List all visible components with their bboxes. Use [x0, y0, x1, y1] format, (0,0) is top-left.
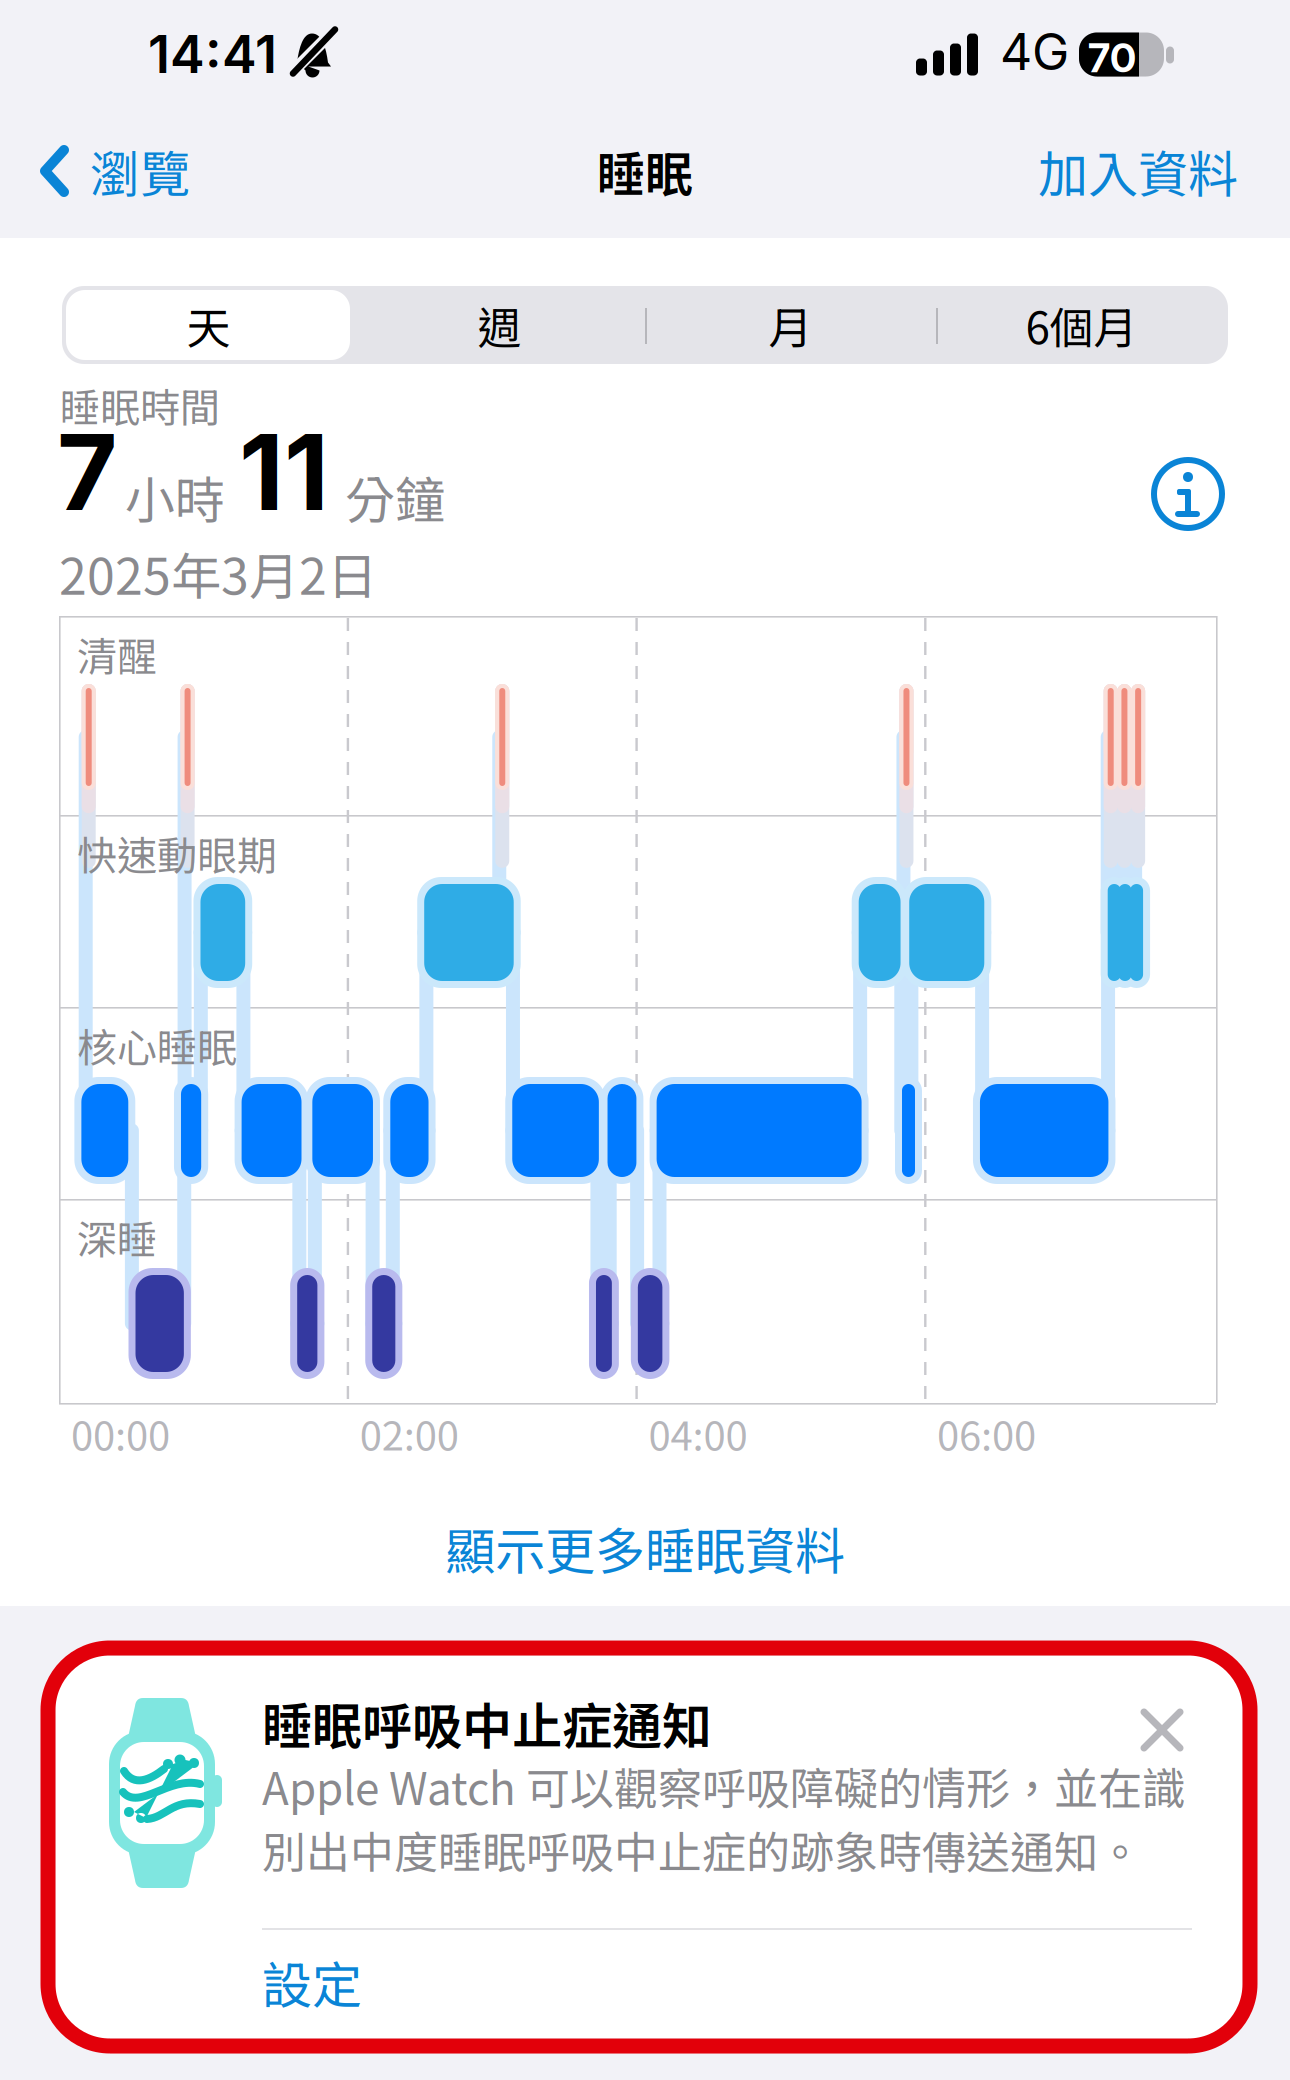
staticText: 7 [57, 409, 117, 535]
staticText: 深睡 [77, 1208, 157, 1266]
button[interactable]: 月 [645, 286, 936, 364]
button[interactable]: 加入資料 [1038, 121, 1290, 221]
staticText: 04:00 [648, 1404, 747, 1462]
staticText: 6個月 [1025, 293, 1137, 357]
button[interactable]: 天 [63, 286, 354, 364]
button[interactable]: 瀏覽 [0, 121, 190, 221]
button[interactable]: 週 [354, 286, 645, 364]
staticText: Apple Watch 可以觀察呼吸障礙的情形，並在識別出中度睡眠呼吸中止症的跡… [262, 1754, 1186, 1881]
staticText: 小時 [125, 461, 225, 533]
staticText: 核心睡眠 [77, 1016, 237, 1074]
staticText: 06:00 [937, 1404, 1036, 1462]
button[interactable]: 資訊 [1143, 449, 1233, 539]
button[interactable]: 關閉 [1124, 1692, 1200, 1768]
staticText: 14:41 [148, 22, 277, 85]
staticText: 睡眠 [597, 136, 693, 206]
button[interactable]: 6個月 [936, 286, 1227, 364]
staticText: 02:00 [360, 1404, 459, 1462]
staticText: 加入資料 [1038, 135, 1238, 207]
staticText: 月 [768, 293, 812, 357]
staticText: 11 [239, 409, 329, 535]
staticText: 00:00 [71, 1404, 170, 1462]
staticText: 清醒 [77, 625, 157, 683]
button[interactable]: 顯示更多睡眠資料 [0, 1500, 1290, 1596]
staticText: 70 [1088, 33, 1136, 82]
staticText: 4G [1000, 21, 1069, 82]
staticText: 週 [477, 293, 521, 357]
staticText: 睡眠呼吸中止症通知 [262, 1687, 712, 1759]
staticText: 睡眠時間 [60, 376, 220, 434]
button[interactable]: 設定 [262, 1944, 462, 2020]
staticText: 設定 [262, 1946, 362, 2018]
staticText: 快速動眼期 [77, 824, 277, 882]
staticText: 瀏覽 [90, 135, 190, 207]
staticText: 顯示更多睡眠資料 [445, 1512, 845, 1584]
staticText: 分鐘 [345, 461, 445, 533]
staticText: 2025年3月2日 [59, 537, 377, 609]
staticText: 天 [186, 293, 230, 357]
